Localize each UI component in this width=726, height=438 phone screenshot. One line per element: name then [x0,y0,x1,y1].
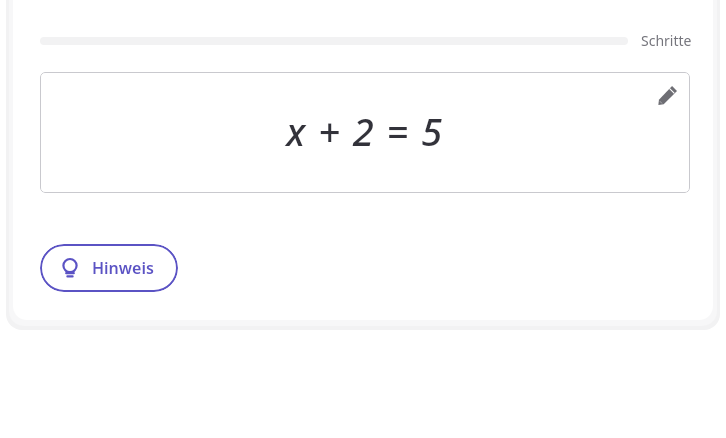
button[interactable]: Hinweis [40,244,178,292]
staticText: Schritte [641,31,692,50]
staticText: x + 2 = 5 [286,105,444,157]
button[interactable]: Bearbeiten [650,78,684,112]
staticText: Hinweis [92,257,154,279]
